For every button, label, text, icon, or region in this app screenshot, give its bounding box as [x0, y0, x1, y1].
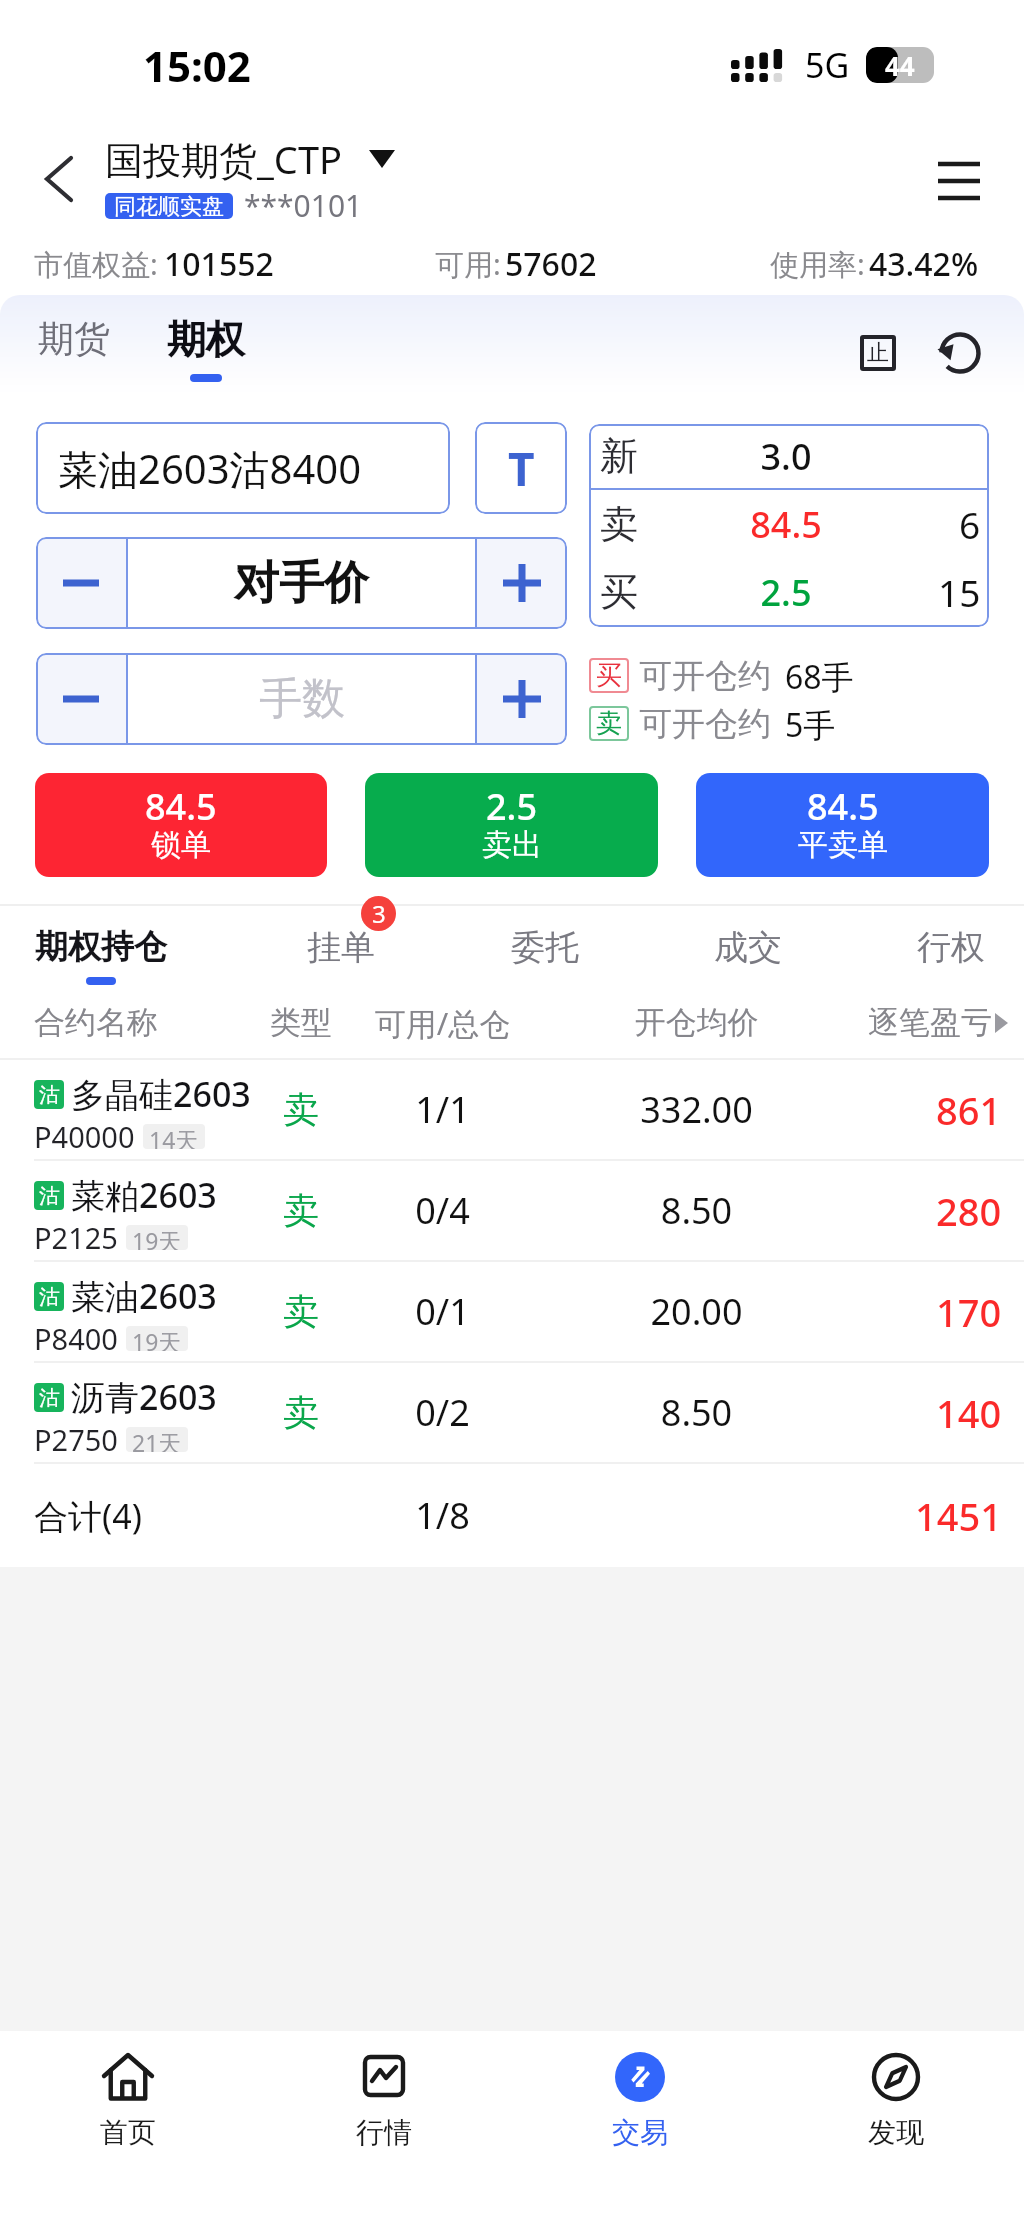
- staticText: 0/4: [355, 1186, 530, 1235]
- staticText: 卖: [236, 1087, 366, 1132]
- staticText: 新: [600, 432, 638, 480]
- staticText: 菜油2603沽8400: [58, 441, 362, 496]
- staticText: 菜油2603: [71, 1273, 217, 1319]
- staticText: 挂单: [307, 926, 375, 969]
- staticText: 沽: [39, 1385, 60, 1411]
- button[interactable]: 期权: [151, 307, 261, 390]
- staticText: 买: [600, 568, 638, 616]
- button[interactable]: Stop order: [846, 321, 910, 385]
- staticText: 19天: [132, 1326, 182, 1351]
- staticText: 合计(4): [34, 1493, 142, 1539]
- staticText: 84.5: [807, 782, 879, 831]
- button[interactable]: 沽: [0, 1060, 1024, 1159]
- staticText: 开仓均价: [594, 1003, 799, 1042]
- staticText: 可用/总仓: [355, 1002, 530, 1044]
- button[interactable]: 菜油2603沽8400: [36, 422, 450, 514]
- staticText: 3: [372, 897, 386, 930]
- staticText: 170: [936, 1286, 1002, 1338]
- staticText: P8400: [34, 1319, 118, 1358]
- button[interactable]: Menu: [919, 142, 999, 222]
- staticText: 锁单: [151, 826, 211, 864]
- staticText: 20.00: [594, 1287, 799, 1336]
- button[interactable]: Increase: [477, 653, 567, 745]
- staticText: 平卖单: [798, 826, 888, 864]
- staticText: 成交: [714, 926, 782, 969]
- button[interactable]: 84.5: [35, 773, 327, 877]
- staticText: 国投期货_CTP: [105, 133, 343, 185]
- staticText: 1/8: [355, 1491, 530, 1540]
- staticText: 332.00: [594, 1085, 799, 1134]
- button[interactable]: 沽: [0, 1161, 1024, 1260]
- staticText: ***0101: [244, 185, 363, 226]
- staticText: 1451: [915, 1490, 1002, 1542]
- staticText: 卖: [236, 1390, 366, 1435]
- staticText: 19天: [132, 1225, 182, 1250]
- staticText: 6: [959, 499, 981, 549]
- staticText: 发现: [868, 2115, 924, 2150]
- staticText: 861: [936, 1084, 1002, 1136]
- button[interactable]: 沽: [0, 1262, 1024, 1361]
- staticText: 21天: [132, 1427, 182, 1452]
- button[interactable]: 新: [589, 424, 989, 627]
- button[interactable]: 首页: [0, 2031, 256, 2225]
- button[interactable]: 行情: [256, 2031, 512, 2225]
- button[interactable]: 期货: [22, 300, 126, 377]
- button[interactable]: 2.5: [365, 773, 658, 877]
- button[interactable]: Decrease: [36, 653, 126, 745]
- staticText: 可开仓约: [639, 655, 771, 695]
- staticText: 类型: [236, 1003, 366, 1042]
- staticText: 8.50: [594, 1388, 799, 1437]
- staticText: 140: [936, 1387, 1002, 1439]
- staticText: 2.5: [706, 568, 866, 617]
- staticText: 84.5: [145, 782, 217, 831]
- staticText: 行权: [917, 926, 985, 969]
- staticText: 交易: [612, 2115, 668, 2150]
- staticText: 2.5: [486, 782, 537, 831]
- button[interactable]: 对手价: [128, 537, 475, 629]
- button[interactable]: 手数: [128, 653, 475, 745]
- staticText: 逐笔盈亏: [868, 1003, 992, 1042]
- staticText: 同花顺实盘: [114, 193, 224, 219]
- staticText: 多晶硅2603: [71, 1071, 251, 1117]
- staticText: 44: [885, 48, 915, 83]
- staticText: 8.50: [594, 1186, 799, 1235]
- staticText: 1/1: [355, 1085, 530, 1134]
- button[interactable]: 84.5: [696, 773, 989, 877]
- button[interactable]: 委托: [435, 906, 655, 987]
- staticText: 可开仓约: [639, 703, 771, 743]
- button[interactable]: Decrease: [36, 537, 126, 629]
- staticText: 卖: [600, 500, 638, 548]
- button[interactable]: 成交: [638, 906, 858, 987]
- staticText: 可用:: [435, 244, 501, 284]
- staticText: 15: [938, 567, 981, 617]
- staticText: 15:02: [143, 37, 251, 94]
- staticText: 沽: [39, 1082, 60, 1108]
- staticText: 行情: [356, 2115, 412, 2150]
- staticText: 43.42%: [869, 242, 979, 286]
- button[interactable]: 沽: [0, 1363, 1024, 1462]
- staticText: 卖: [236, 1289, 366, 1334]
- staticText: P2750: [34, 1420, 118, 1459]
- staticText: 沥青2603: [71, 1374, 217, 1420]
- button[interactable]: 交易: [512, 2031, 768, 2225]
- staticText: 买: [596, 659, 622, 692]
- staticText: 280: [936, 1185, 1002, 1237]
- button[interactable]: Increase: [477, 537, 567, 629]
- staticText: 84.5: [706, 500, 866, 549]
- button[interactable]: 期权持仓: [0, 906, 211, 987]
- staticText: 委托: [511, 926, 579, 969]
- button[interactable]: 挂单: [231, 906, 451, 987]
- staticText: 5手: [785, 703, 836, 743]
- staticText: 卖: [236, 1188, 366, 1233]
- staticText: 14天: [149, 1124, 199, 1149]
- staticText: 沽: [39, 1183, 60, 1209]
- button[interactable]: Back: [22, 142, 96, 216]
- button[interactable]: T type: [475, 422, 567, 514]
- button[interactable]: 行权: [841, 906, 1024, 987]
- staticText: 使用率:: [770, 244, 865, 284]
- staticText: 卖: [596, 707, 622, 740]
- staticText: 3.0: [706, 432, 866, 481]
- button[interactable]: 发现: [768, 2031, 1024, 2225]
- staticText: 0/1: [355, 1287, 530, 1336]
- button[interactable]: Refresh: [928, 321, 992, 385]
